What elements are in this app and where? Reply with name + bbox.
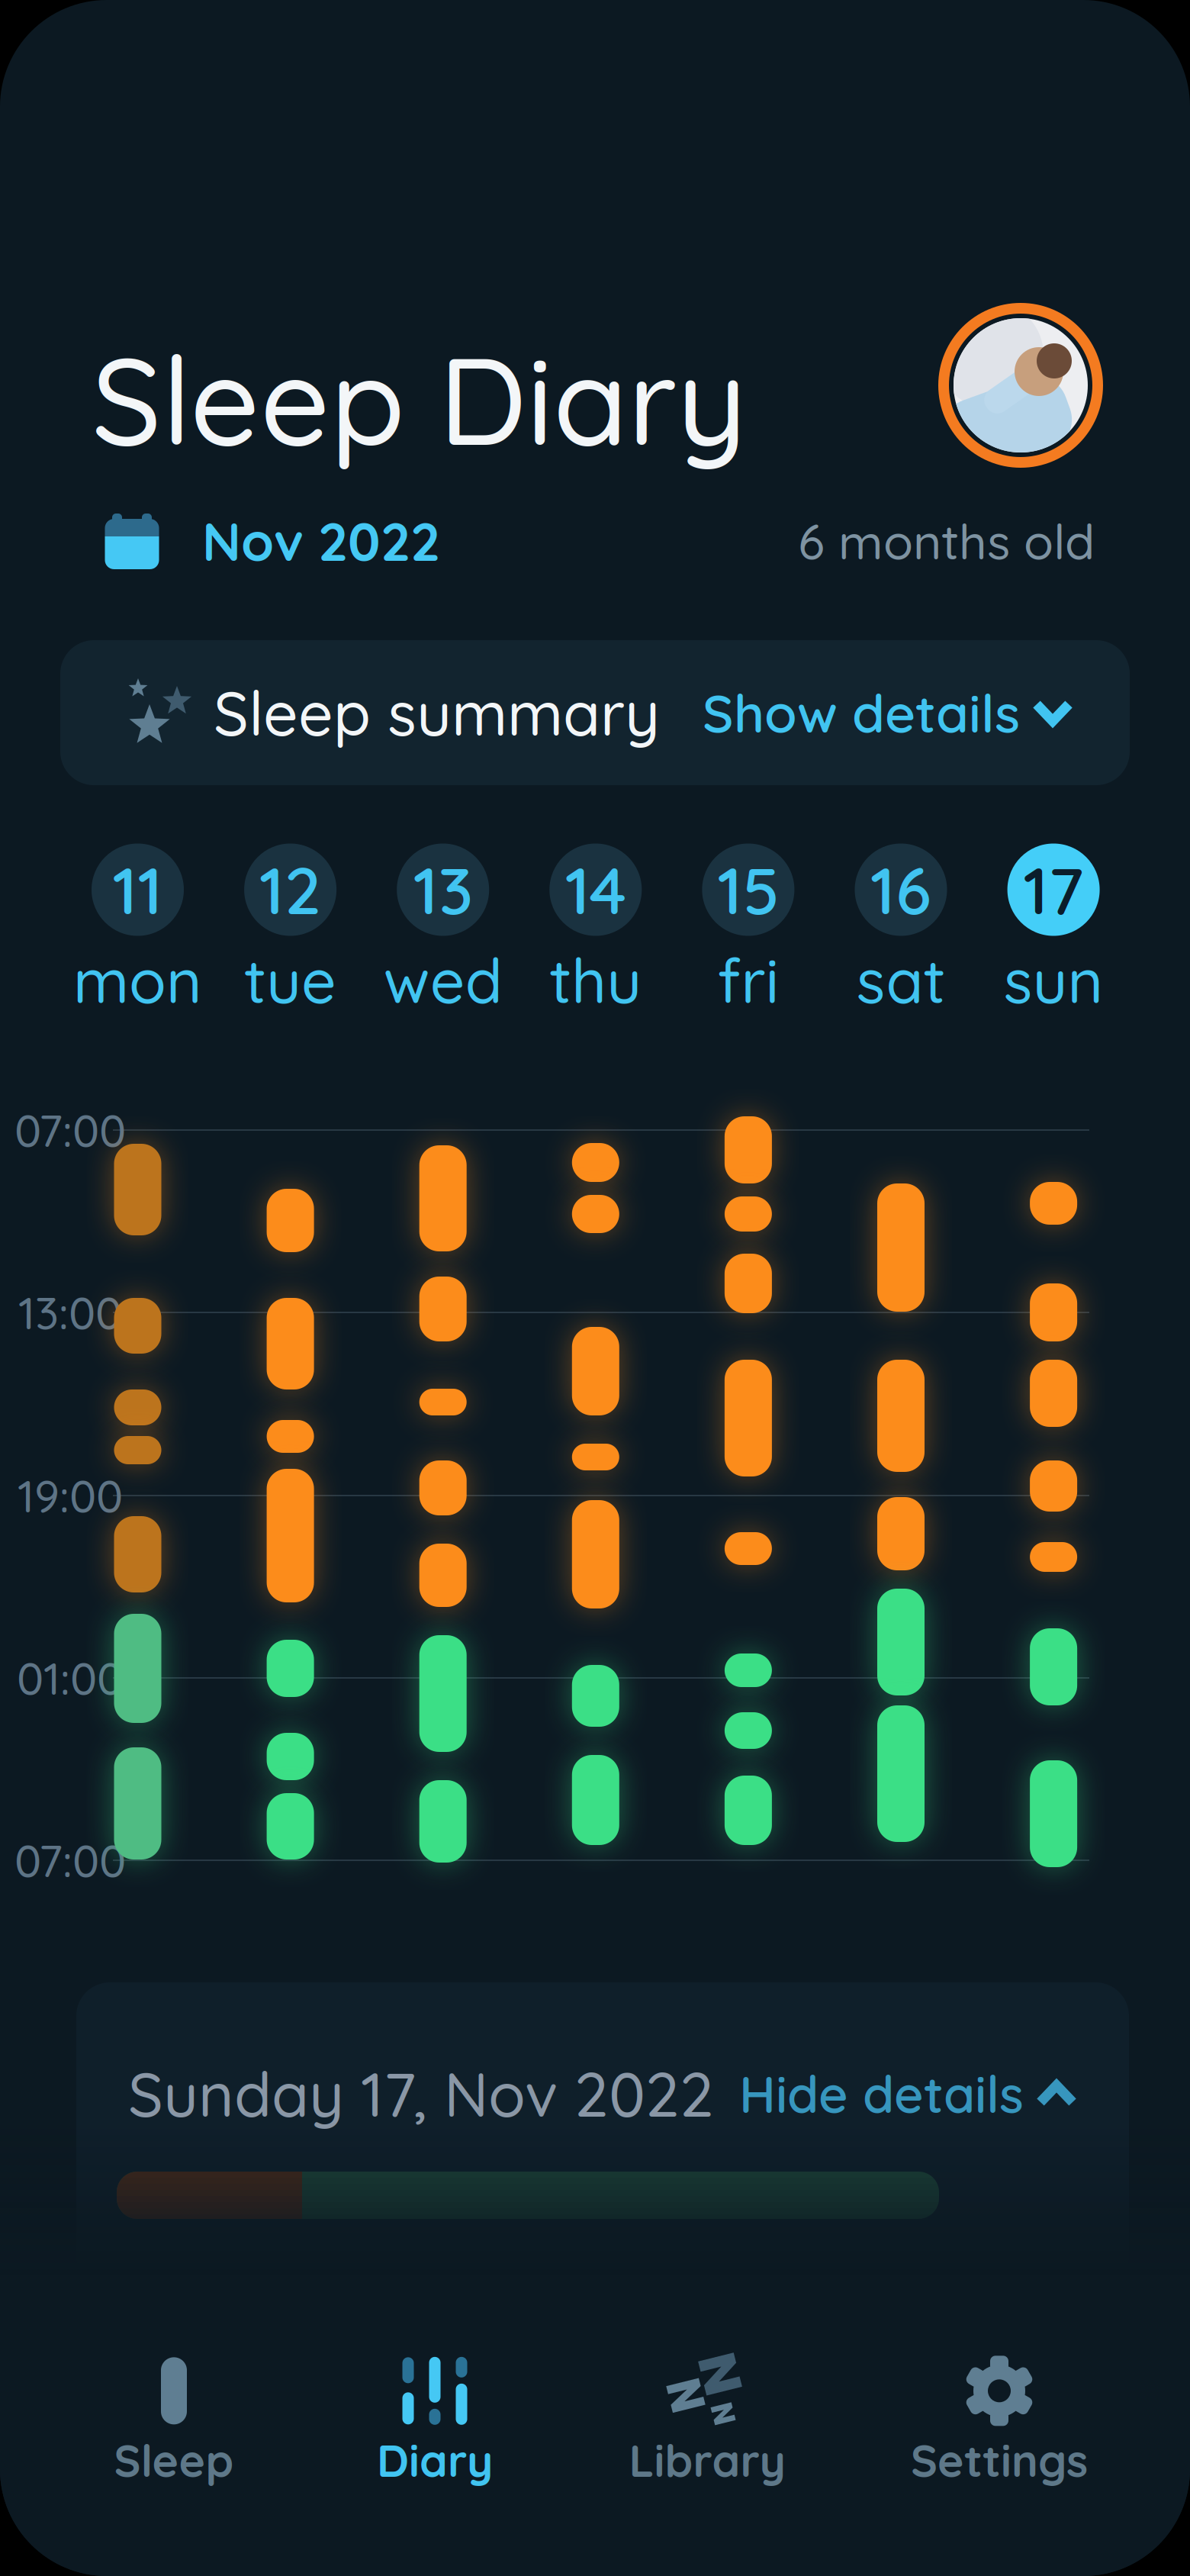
staticText: 07:00 bbox=[14, 1102, 126, 1158]
staticText: sun bbox=[1004, 942, 1103, 1018]
staticText: 16 bbox=[870, 849, 931, 930]
staticText: Sleep Diary bbox=[92, 323, 747, 475]
button[interactable]: Library bbox=[612, 2362, 802, 2482]
staticText: wed bbox=[383, 942, 502, 1018]
button[interactable]: Settings bbox=[904, 2362, 1095, 2482]
staticText: Hide details bbox=[739, 2062, 1024, 2126]
staticText: Sleep bbox=[114, 2432, 234, 2488]
button[interactable]: 16 bbox=[836, 850, 966, 1012]
staticText: 15 bbox=[717, 849, 779, 930]
button[interactable]: 14 bbox=[531, 850, 660, 1012]
staticText: 14 bbox=[565, 849, 626, 930]
button[interactable]: Profile bbox=[937, 301, 1105, 469]
button[interactable]: Diary bbox=[339, 2362, 530, 2482]
button[interactable]: 17 bbox=[989, 850, 1118, 1012]
staticText: Sleep summary bbox=[214, 675, 660, 751]
staticText: fri bbox=[717, 942, 779, 1018]
button[interactable]: Nov 2022 bbox=[105, 508, 440, 574]
staticText: mon bbox=[73, 942, 202, 1018]
staticText: 11 bbox=[113, 849, 163, 930]
staticText: Library bbox=[629, 2432, 785, 2488]
staticText: 17 bbox=[1023, 849, 1084, 930]
staticText: tue bbox=[244, 942, 336, 1018]
staticText: Nov 2022 bbox=[202, 508, 440, 574]
staticText: 6 months old bbox=[798, 510, 1095, 572]
staticText: 07:00 bbox=[14, 1832, 126, 1888]
staticText: sat bbox=[856, 942, 946, 1018]
button[interactable]: Sleep bbox=[79, 2362, 269, 2482]
staticText: 19:00 bbox=[18, 1468, 123, 1523]
staticText: 13:00 bbox=[18, 1284, 122, 1340]
button[interactable]: Sleep summary bbox=[60, 640, 1130, 785]
button[interactable]: 12 bbox=[225, 850, 355, 1012]
staticText: 13 bbox=[413, 849, 473, 930]
button[interactable]: Hide details bbox=[739, 2062, 1073, 2126]
staticText: Settings bbox=[911, 2432, 1088, 2488]
button[interactable]: 15 bbox=[683, 850, 813, 1012]
button[interactable]: 11 bbox=[73, 850, 203, 1012]
staticText: Show details bbox=[703, 680, 1020, 746]
staticText: thu bbox=[549, 942, 642, 1018]
staticText: Sunday 17, Nov 2022 bbox=[128, 2056, 714, 2132]
staticText: Diary bbox=[377, 2432, 493, 2488]
button[interactable]: 13 bbox=[378, 850, 508, 1012]
staticText: 12 bbox=[259, 849, 321, 930]
staticText: 01:00 bbox=[17, 1650, 124, 1706]
